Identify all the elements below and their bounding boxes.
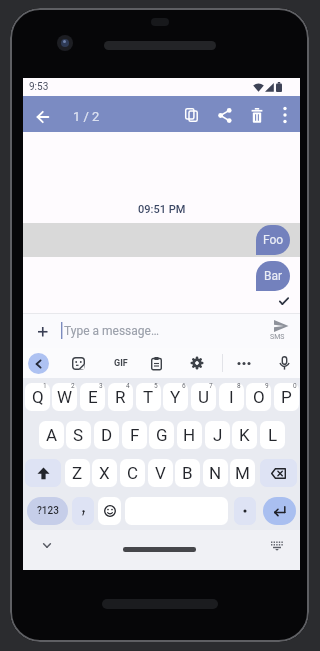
staticText: Foo (263, 233, 284, 247)
button[interactable]: G (149, 421, 174, 449)
staticText: E (88, 387, 98, 407)
button[interactable] (37, 111, 49, 123)
button[interactable]: GIF (107, 353, 135, 373)
button[interactable]: M (230, 459, 255, 487)
staticText: P (281, 387, 292, 407)
staticText: J (213, 425, 223, 445)
button[interactable] (98, 497, 121, 525)
button[interactable]: L (260, 421, 285, 449)
staticText: 09:51 PM (138, 203, 186, 216)
button[interactable]: R (108, 383, 133, 411)
staticText: V (155, 463, 166, 483)
button[interactable]: B (175, 459, 200, 487)
button[interactable]: U (191, 383, 216, 411)
button[interactable]: T (136, 383, 161, 411)
staticText: 5 (154, 382, 158, 390)
button[interactable]: C (120, 459, 145, 487)
button[interactable]: K (232, 421, 257, 449)
button[interactable] (218, 108, 232, 123)
button[interactable]: Foo (256, 225, 290, 255)
button[interactable] (270, 541, 284, 551)
staticText: 9 (265, 382, 269, 390)
button[interactable]: Z (65, 459, 90, 487)
button[interactable]: F (122, 421, 147, 449)
staticText: GIF (114, 358, 128, 369)
staticText: S (73, 425, 84, 445)
staticText: Z (72, 463, 83, 483)
staticText: C (127, 463, 139, 483)
staticText: 9:53 (29, 81, 49, 93)
staticText: 3 (99, 382, 103, 390)
staticText: X (99, 463, 110, 483)
staticText: K (239, 425, 250, 445)
button[interactable] (237, 362, 251, 366)
button[interactable] (251, 108, 263, 123)
button[interactable] (72, 497, 94, 525)
button[interactable] (123, 547, 196, 552)
staticText: G (156, 425, 168, 445)
button[interactable]: ?123 (27, 497, 68, 525)
button[interactable]: A (39, 421, 64, 449)
staticText: Y (170, 387, 181, 407)
staticText: W (57, 387, 73, 407)
button[interactable] (274, 320, 289, 332)
staticText: Bar (264, 269, 283, 283)
staticText: 1 (43, 382, 47, 390)
button[interactable] (43, 543, 51, 548)
staticText: D (101, 425, 113, 445)
staticText: 1 / 2 (73, 109, 100, 124)
staticText: 8 (237, 382, 241, 390)
button[interactable]: P (274, 383, 299, 411)
button[interactable] (38, 327, 48, 337)
staticText: 0 (293, 382, 297, 390)
staticText: T (143, 387, 154, 407)
staticText: U (198, 387, 210, 407)
button[interactable]: S (66, 421, 91, 449)
button[interactable]: V (148, 459, 173, 487)
button[interactable]: H (177, 421, 202, 449)
staticText: Type a message… (64, 324, 159, 338)
button[interactable] (281, 106, 289, 124)
staticText: SMS (270, 333, 285, 341)
button[interactable] (279, 356, 290, 371)
button[interactable]: E (80, 383, 105, 411)
staticText: Q (32, 387, 44, 407)
staticText: M (235, 463, 250, 483)
button[interactable] (25, 459, 61, 487)
staticText: I (229, 387, 234, 407)
button[interactable] (28, 353, 49, 374)
staticText: F (130, 425, 140, 445)
button[interactable]: Bar (256, 261, 290, 291)
button[interactable] (151, 357, 162, 371)
button[interactable]: Y (163, 383, 188, 411)
button[interactable] (234, 497, 256, 525)
staticText: 7 (209, 382, 213, 390)
staticText: B (182, 463, 193, 483)
staticText: 2 (71, 382, 75, 390)
button[interactable]: Q (25, 383, 50, 411)
button[interactable] (185, 108, 198, 122)
staticText: 6 (182, 382, 186, 390)
button[interactable] (260, 459, 297, 487)
button[interactable]: J (205, 421, 230, 449)
button[interactable]: N (203, 459, 228, 487)
button[interactable] (263, 497, 296, 525)
button[interactable] (191, 357, 203, 369)
button[interactable]: Type a message… (64, 313, 264, 348)
staticText: N (209, 463, 222, 483)
button[interactable]: W (52, 383, 77, 411)
staticText: 4 (126, 382, 130, 390)
staticText: H (183, 425, 196, 445)
staticText: ?123 (37, 505, 59, 517)
staticText: R (115, 387, 126, 407)
button[interactable]: I (219, 383, 244, 411)
staticText: O (253, 387, 265, 407)
staticText: A (46, 425, 58, 445)
staticText: L (268, 425, 278, 445)
button[interactable] (72, 357, 85, 370)
button[interactable]: D (94, 421, 119, 449)
button[interactable]: O (246, 383, 271, 411)
button[interactable]: X (92, 459, 117, 487)
